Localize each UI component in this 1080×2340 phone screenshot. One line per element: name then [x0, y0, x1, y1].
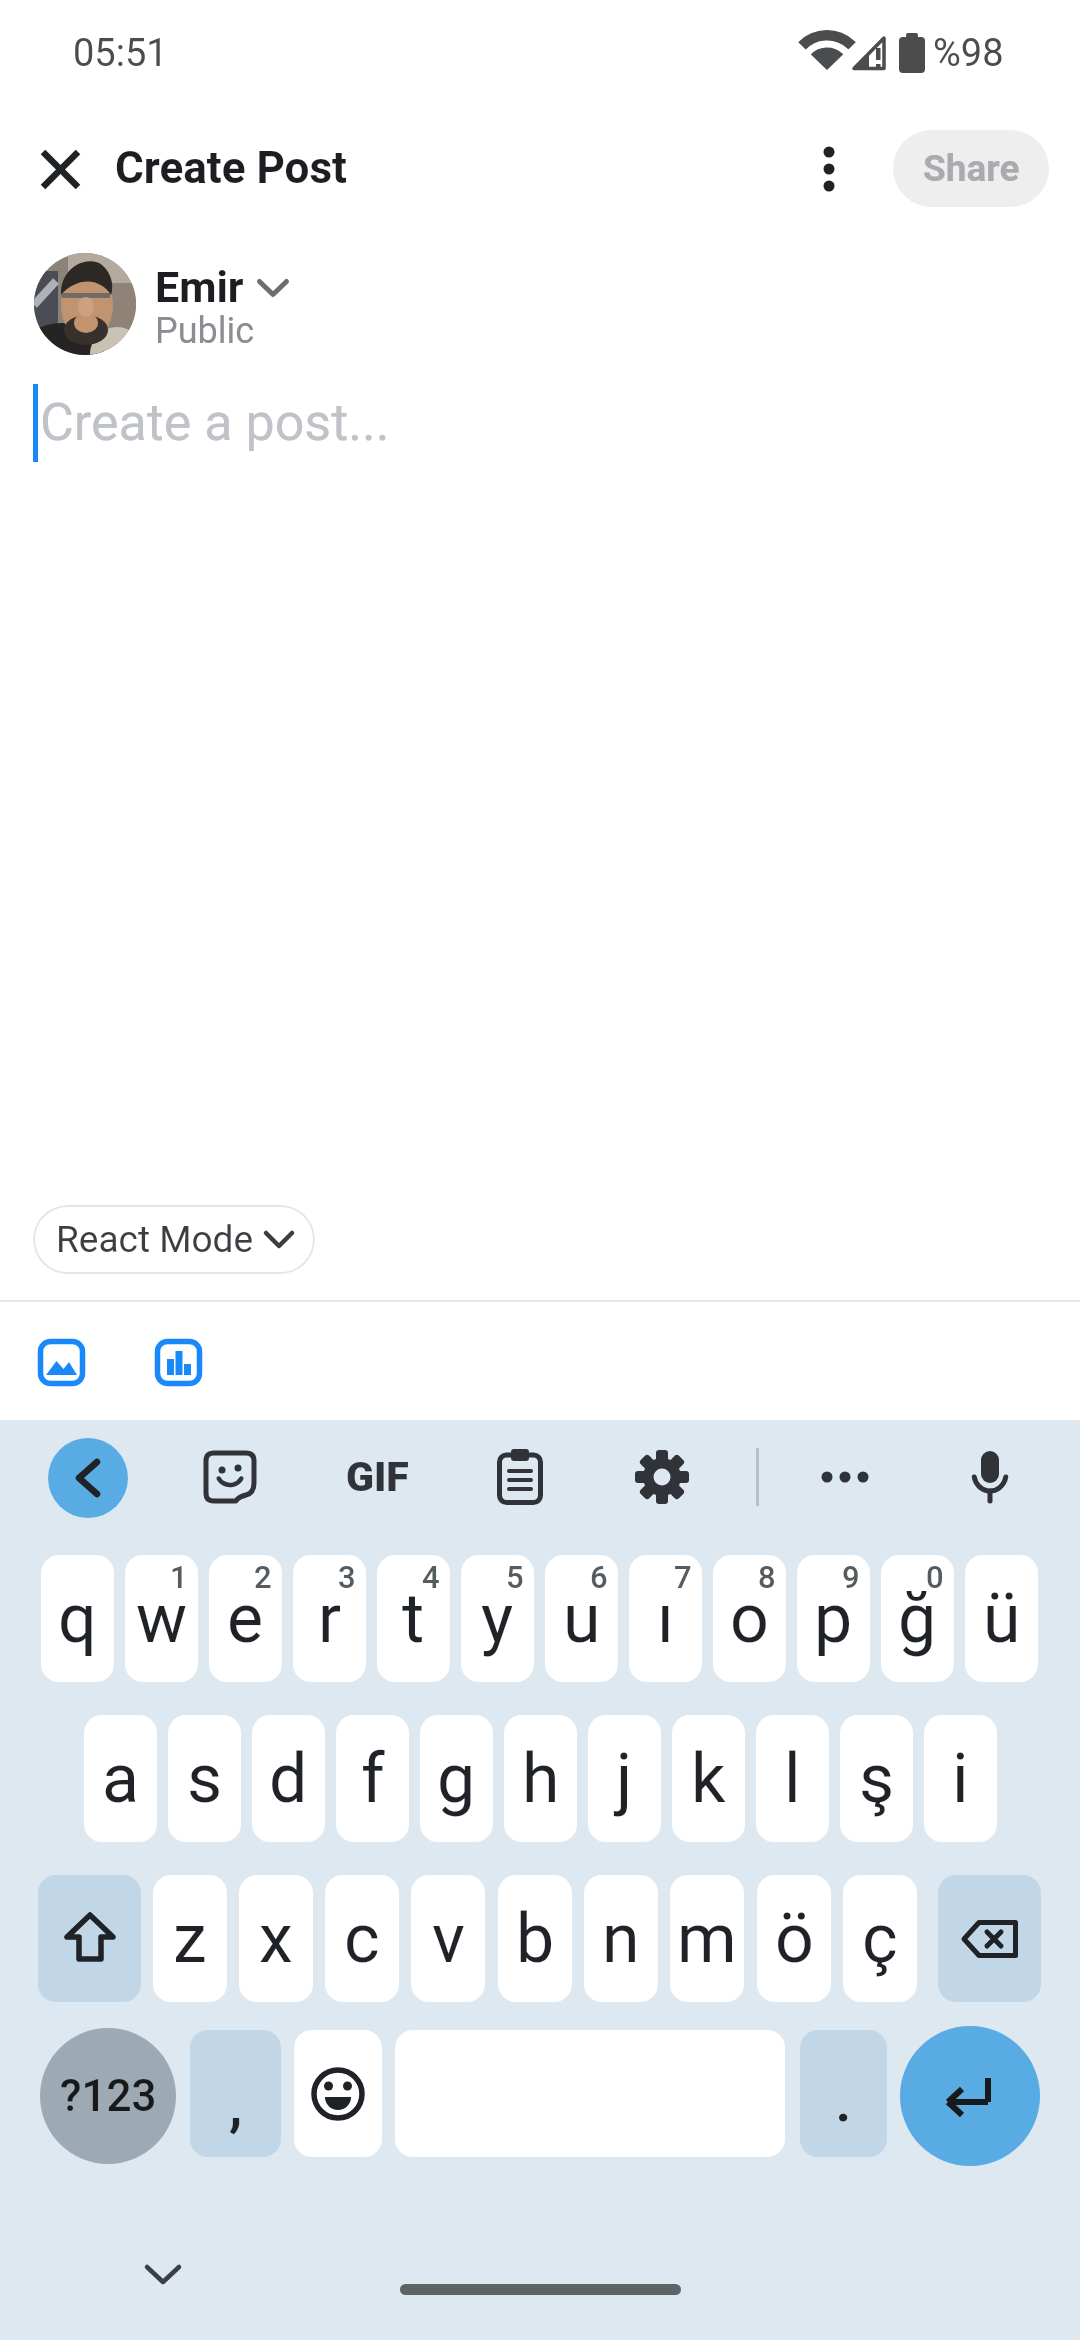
staticText: ı — [657, 1579, 674, 1659]
staticText: ü — [983, 1579, 1021, 1659]
button[interactable]: q — [41, 1555, 114, 1682]
staticText: 6 — [590, 1559, 608, 1595]
button[interactable]: w — [125, 1555, 198, 1682]
button[interactable]: GIF — [338, 1450, 416, 1504]
button[interactable]: s — [168, 1715, 241, 1842]
button[interactable]: j — [588, 1715, 661, 1842]
button[interactable]: p — [797, 1555, 870, 1682]
staticText: s — [187, 1739, 223, 1819]
button[interactable] — [28, 137, 92, 201]
button[interactable]: d — [252, 1715, 325, 1842]
button[interactable] — [492, 1446, 548, 1508]
staticText: 4 — [422, 1559, 440, 1595]
staticText: . — [835, 2065, 852, 2135]
button[interactable]: Share — [893, 130, 1049, 207]
staticText: ö — [775, 1899, 814, 1979]
staticText: c — [344, 1899, 380, 1979]
button[interactable]: ı — [629, 1555, 702, 1682]
staticText: q — [58, 1579, 97, 1659]
staticText: z — [173, 1899, 207, 1979]
button[interactable]: ü — [965, 1555, 1038, 1682]
staticText: 5 — [506, 1559, 524, 1595]
staticText: n — [602, 1899, 640, 1979]
button[interactable]: React Mode — [33, 1205, 315, 1274]
button[interactable]: n — [584, 1875, 658, 2002]
staticText: 9 — [842, 1559, 860, 1595]
button[interactable] — [38, 1339, 85, 1386]
staticText: %98 — [933, 31, 1004, 76]
button[interactable]: g — [420, 1715, 493, 1842]
button[interactable] — [145, 2265, 181, 2284]
button[interactable]: c — [325, 1875, 399, 2002]
button[interactable]: l — [756, 1715, 829, 1842]
button[interactable] — [155, 1339, 202, 1386]
button[interactable] — [48, 1438, 128, 1518]
button[interactable]: h — [504, 1715, 577, 1842]
staticText: ç — [862, 1899, 898, 1979]
button[interactable]: . — [800, 2030, 887, 2157]
button[interactable]: a — [84, 1715, 157, 1842]
staticText: u — [563, 1579, 601, 1659]
button[interactable]: ç — [843, 1875, 917, 2002]
button[interactable]: Emir — [34, 253, 454, 363]
button[interactable]: ?123 — [40, 2028, 176, 2164]
staticText: 7 — [674, 1559, 692, 1595]
button[interactable]: x — [239, 1875, 313, 2002]
button[interactable] — [797, 137, 861, 201]
staticText: l — [784, 1739, 801, 1819]
staticText: 2 — [254, 1559, 272, 1595]
staticText: h — [522, 1739, 560, 1819]
button[interactable]: u — [545, 1555, 618, 1682]
staticText: v — [432, 1899, 465, 1979]
button[interactable] — [900, 2026, 1040, 2166]
button[interactable]: i — [924, 1715, 997, 1842]
staticText: GIF — [346, 1453, 409, 1501]
button[interactable] — [938, 1875, 1041, 2002]
button[interactable]: y — [461, 1555, 534, 1682]
button[interactable]: o — [713, 1555, 786, 1682]
staticText: b — [516, 1899, 555, 1979]
staticText: t — [402, 1579, 425, 1659]
button[interactable] — [200, 1447, 260, 1507]
staticText: j — [616, 1739, 633, 1819]
button[interactable]: ğ — [881, 1555, 954, 1682]
button[interactable] — [38, 1875, 141, 2002]
staticText: , — [229, 2069, 243, 2139]
staticText: 0 — [926, 1559, 944, 1595]
staticText: ğ — [898, 1579, 937, 1659]
button[interactable] — [294, 2030, 382, 2157]
button[interactable]: v — [411, 1875, 485, 2002]
button[interactable]: ş — [840, 1715, 913, 1842]
staticText: 1 — [170, 1559, 188, 1595]
button[interactable]: r — [293, 1555, 366, 1682]
staticText: Share — [923, 147, 1020, 190]
staticText: x — [259, 1899, 293, 1979]
button[interactable]: m — [670, 1875, 744, 2002]
button[interactable]: z — [153, 1875, 227, 2002]
staticText: o — [730, 1579, 769, 1659]
staticText: a — [102, 1739, 139, 1819]
staticText: Create Post — [115, 142, 347, 194]
button[interactable] — [966, 1446, 1014, 1508]
button[interactable] — [634, 1449, 690, 1505]
staticText: g — [437, 1739, 476, 1819]
staticText: r — [318, 1579, 342, 1659]
staticText: e — [227, 1579, 264, 1659]
button[interactable]: , — [190, 2030, 281, 2157]
staticText: k — [691, 1739, 726, 1819]
staticText: d — [269, 1739, 308, 1819]
staticText: y — [481, 1579, 514, 1659]
button[interactable] — [815, 1452, 875, 1502]
button[interactable]: b — [498, 1875, 572, 2002]
staticText: i — [952, 1739, 969, 1819]
button[interactable]: f — [336, 1715, 409, 1842]
button[interactable]: ö — [757, 1875, 831, 2002]
staticText: Public — [155, 310, 255, 352]
button[interactable]: k — [672, 1715, 745, 1842]
button[interactable]: e — [209, 1555, 282, 1682]
staticText: 8 — [758, 1559, 776, 1595]
staticText: f — [361, 1739, 385, 1819]
button[interactable]: t — [377, 1555, 450, 1682]
staticText: m — [677, 1899, 737, 1979]
